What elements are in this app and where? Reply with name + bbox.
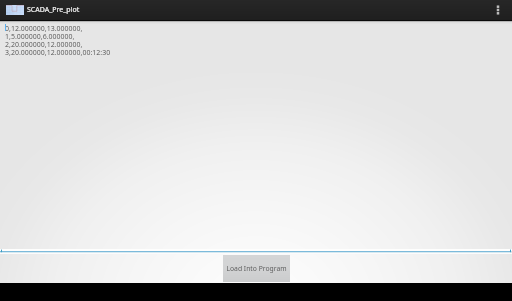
button[interactable]: More options	[488, 0, 508, 20]
staticText: 2,20.000000,12.000000,	[5, 40, 83, 48]
staticText: 3,20.000000,12.000000,00:12:30	[5, 48, 111, 56]
button[interactable]: Load Into Program	[223, 255, 290, 282]
staticText: 0,12.000000,13.000000,	[5, 24, 83, 32]
staticText: SCADA_Pre_plot	[27, 5, 80, 15]
staticText: Load Into Program	[226, 264, 287, 273]
staticText: 1,5.000000,6.000000,	[5, 32, 75, 40]
